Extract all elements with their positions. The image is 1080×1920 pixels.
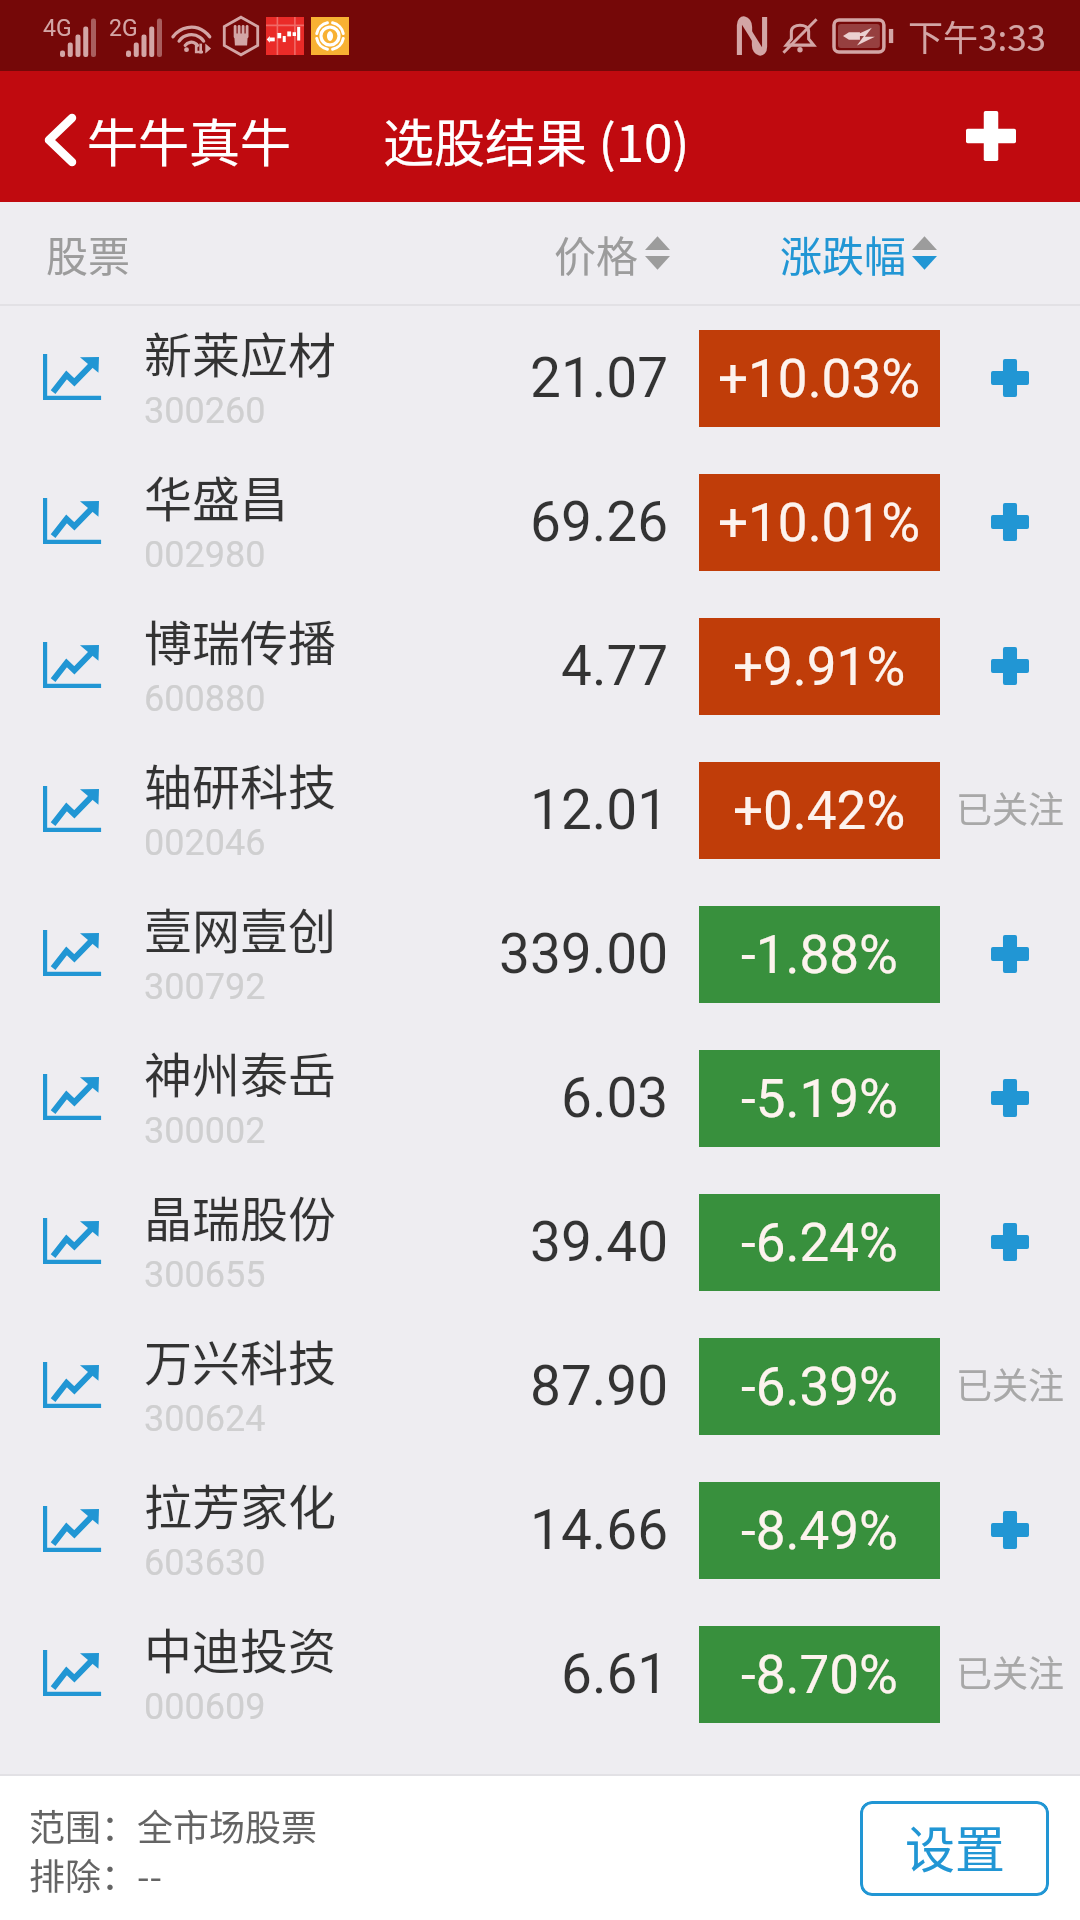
staticText: 002046 xyxy=(144,822,266,864)
staticText: 轴研科技 xyxy=(144,749,337,819)
staticText: 39.40 xyxy=(530,1210,669,1274)
staticText: 300002 xyxy=(144,1110,266,1152)
staticText: 600880 xyxy=(144,678,266,720)
button[interactable]: 万兴科技 xyxy=(0,1314,1080,1458)
staticText: 339.00 xyxy=(499,922,669,986)
staticText: 6.03 xyxy=(561,1066,669,1130)
staticText: 中迪投资 xyxy=(144,1613,337,1683)
staticText: 603630 xyxy=(144,1542,266,1584)
button[interactable]: 轴研科技 xyxy=(0,738,1080,882)
staticText: 博瑞传播 xyxy=(144,605,337,675)
staticText: -5.19% xyxy=(741,1068,898,1130)
button[interactable]: 神州泰岳 xyxy=(0,1026,1080,1170)
staticText: +9.91% xyxy=(733,636,906,698)
staticText: 21.07 xyxy=(530,346,669,410)
staticText: 选股结果 (10) xyxy=(383,103,690,177)
button[interactable]: 涨跌幅 xyxy=(764,202,1080,304)
staticText: -8.49% xyxy=(741,1500,898,1562)
staticText: 拉芳家化 xyxy=(144,1469,337,1539)
staticText: 300624 xyxy=(144,1398,266,1440)
staticText: 壹网壹创 xyxy=(144,893,337,963)
staticText: 华盛昌 xyxy=(144,461,289,531)
staticText: 下午3:33 xyxy=(908,10,1047,61)
staticText: 已关注 xyxy=(956,781,1065,833)
staticText: 4G xyxy=(43,15,72,42)
staticText: +10.03% xyxy=(718,348,921,410)
button[interactable]: 加自选 xyxy=(950,306,1070,450)
staticText: 涨跌幅 xyxy=(780,223,907,284)
staticText: 已关注 xyxy=(956,1645,1065,1697)
staticText: 设置 xyxy=(905,1810,1005,1882)
staticText: 万兴科技 xyxy=(144,1325,337,1395)
staticText: -1.88% xyxy=(741,924,898,986)
staticText: 神州泰岳 xyxy=(144,1037,337,1107)
button[interactable]: 牛牛真牛 xyxy=(0,74,330,205)
staticText: 300792 xyxy=(144,966,266,1008)
button[interactable]: 博瑞传播 xyxy=(0,594,1080,738)
staticText: 300655 xyxy=(144,1254,266,1296)
button[interactable]: 中迪投资 xyxy=(0,1602,1080,1746)
staticText: -6.24% xyxy=(741,1212,898,1274)
staticText: 69.26 xyxy=(530,490,669,554)
button[interactable]: 新莱应材 xyxy=(0,306,1080,450)
staticText: 4.77 xyxy=(561,634,669,698)
staticText: -6.39% xyxy=(741,1356,898,1418)
staticText: 000609 xyxy=(144,1686,266,1728)
staticText: +0.42% xyxy=(733,780,906,842)
staticText: 范围：全市场股票 xyxy=(29,1799,318,1851)
staticText: 晶瑞股份 xyxy=(144,1181,337,1251)
button[interactable]: 添加 xyxy=(923,74,1054,205)
button[interactable]: 华盛昌 xyxy=(0,450,1080,594)
button[interactable]: 壹网壹创 xyxy=(0,882,1080,1026)
staticText: 14.66 xyxy=(530,1498,669,1562)
staticText: 6.61 xyxy=(561,1642,669,1706)
button[interactable]: 拉芳家化 xyxy=(0,1458,1080,1602)
button[interactable]: 设置 xyxy=(860,1801,1049,1896)
staticText: 300260 xyxy=(144,390,266,432)
button[interactable]: 加自选 xyxy=(950,1026,1070,1170)
staticText: 排除：-- xyxy=(29,1848,162,1900)
staticText: 已关注 xyxy=(956,1357,1065,1409)
staticText: 股票 xyxy=(46,223,131,284)
staticText: 新莱应材 xyxy=(144,317,337,387)
button[interactable]: 加自选 xyxy=(950,594,1070,738)
staticText: 牛牛真牛 xyxy=(87,103,292,177)
button[interactable]: 股票 xyxy=(0,202,538,304)
button[interactable]: 加自选 xyxy=(950,450,1070,594)
button[interactable]: 加自选 xyxy=(950,882,1070,1026)
staticText: 12.01 xyxy=(530,778,669,842)
staticText: -8.70% xyxy=(741,1644,898,1706)
staticText: 002980 xyxy=(144,534,266,576)
button[interactable]: 价格 xyxy=(538,202,764,304)
staticText: +10.01% xyxy=(718,492,921,554)
button[interactable]: 加自选 xyxy=(950,1170,1070,1314)
button[interactable]: 加自选 xyxy=(950,1458,1070,1602)
staticText: 2G xyxy=(109,15,138,42)
button[interactable]: 晶瑞股份 xyxy=(0,1170,1080,1314)
staticText: 87.90 xyxy=(530,1354,669,1418)
staticText: 价格 xyxy=(554,223,639,284)
